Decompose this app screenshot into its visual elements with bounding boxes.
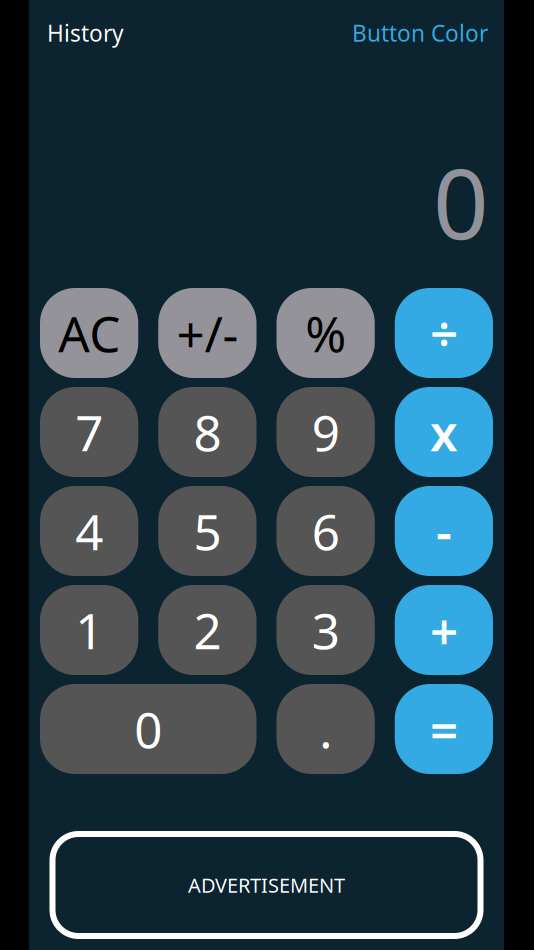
button[interactable]: 3: [276, 585, 375, 675]
button[interactable]: 5: [158, 486, 256, 576]
staticText: 0: [433, 137, 489, 266]
button[interactable]: x: [395, 387, 493, 477]
staticText: History: [47, 18, 124, 48]
button[interactable]: +: [395, 585, 493, 675]
staticText: .: [319, 696, 332, 762]
staticText: +: [430, 597, 458, 663]
staticText: 5: [193, 498, 221, 564]
staticText: Button Color: [352, 18, 488, 48]
staticText: -: [436, 498, 452, 564]
button[interactable]: 8: [158, 387, 256, 477]
staticText: =: [430, 696, 458, 762]
button[interactable]: 4: [40, 486, 138, 576]
button[interactable]: ÷: [395, 288, 493, 378]
button[interactable]: 1: [40, 585, 138, 675]
button[interactable]: +/-: [158, 288, 256, 378]
button[interactable]: 9: [276, 387, 375, 477]
button[interactable]: AC: [40, 288, 138, 378]
button[interactable]: %: [276, 288, 375, 378]
button[interactable]: Button Color: [352, 0, 488, 66]
button[interactable]: -: [395, 486, 493, 576]
button[interactable]: History: [47, 0, 124, 66]
staticText: +/-: [176, 300, 238, 366]
staticText: 4: [75, 498, 103, 564]
staticText: 1: [75, 597, 103, 663]
staticText: 7: [75, 399, 103, 465]
staticText: 8: [193, 399, 221, 465]
button[interactable]: 6: [276, 486, 375, 576]
staticText: 6: [312, 498, 340, 564]
staticText: ÷: [430, 300, 458, 366]
staticText: %: [305, 300, 346, 366]
staticText: AC: [58, 300, 120, 366]
button[interactable]: 0: [40, 684, 256, 774]
staticText: 0: [134, 696, 162, 762]
staticText: 2: [193, 597, 221, 663]
staticText: 9: [312, 399, 340, 465]
button[interactable]: 7: [40, 387, 138, 477]
staticText: x: [430, 399, 458, 465]
staticText: 3: [312, 597, 340, 663]
button[interactable]: 2: [158, 585, 256, 675]
button[interactable]: ADVERTISEMENT: [52, 834, 480, 936]
button[interactable]: =: [395, 684, 493, 774]
staticText: ADVERTISEMENT: [188, 872, 345, 898]
button[interactable]: .: [276, 684, 375, 774]
